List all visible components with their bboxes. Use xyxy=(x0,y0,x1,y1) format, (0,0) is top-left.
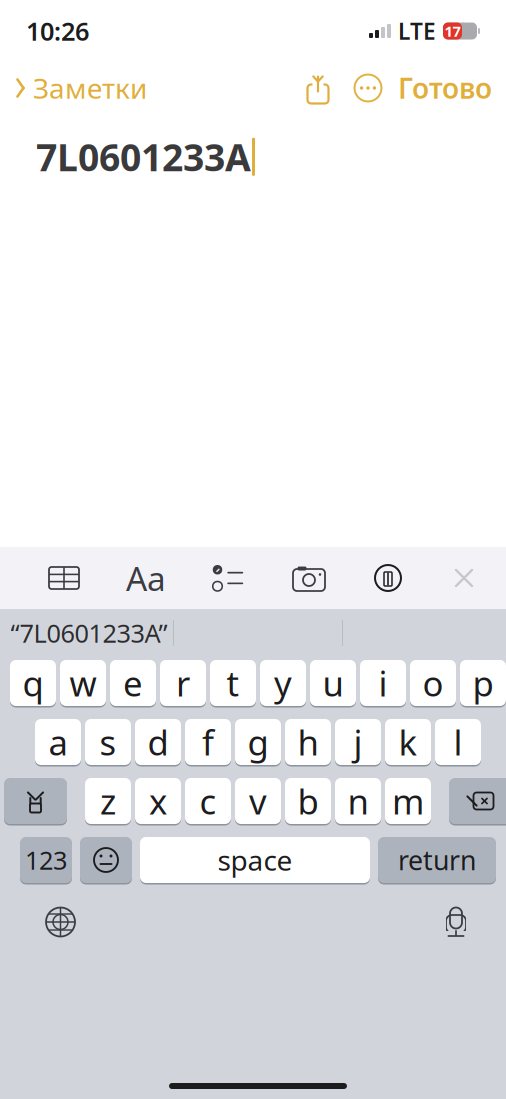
button[interactable]: Заметки xyxy=(0,63,155,113)
button[interactable]: return xyxy=(378,836,496,884)
staticText: o xyxy=(422,660,443,706)
button[interactable]: Hide keyboard xyxy=(444,558,484,598)
button[interactable]: d xyxy=(135,718,181,766)
button[interactable]: Delete xyxy=(449,777,506,825)
staticText: m xyxy=(392,778,424,824)
staticText: Заметки xyxy=(33,69,147,107)
staticText: a xyxy=(48,719,67,765)
button[interactable]: l xyxy=(435,718,481,766)
button[interactable]: r xyxy=(160,659,206,707)
button[interactable]: Готово xyxy=(398,63,506,113)
button[interactable]: t xyxy=(210,659,256,707)
button[interactable]: y xyxy=(260,659,306,707)
staticText: w xyxy=(69,660,96,706)
staticText: space xyxy=(217,841,292,879)
button[interactable]: j xyxy=(335,718,381,766)
staticText: u xyxy=(322,660,343,706)
staticText: x xyxy=(149,778,167,824)
button[interactable]: “7L0601233A” xyxy=(5,610,173,656)
staticText: b xyxy=(297,778,318,824)
button[interactable]: Checklist xyxy=(206,559,250,597)
button[interactable]: v xyxy=(235,777,281,825)
staticText: Aa xyxy=(126,556,166,600)
staticText: LTE xyxy=(398,16,436,46)
staticText: d xyxy=(147,719,168,765)
staticText: 17 xyxy=(444,21,460,41)
staticText: z xyxy=(100,778,116,824)
staticText: 123 xyxy=(25,843,67,877)
staticText: q xyxy=(22,660,43,706)
staticText: s xyxy=(99,719,116,765)
staticText: return xyxy=(398,842,476,878)
staticText: p xyxy=(472,660,493,706)
button[interactable]: b xyxy=(285,777,331,825)
button[interactable]: Insert table xyxy=(42,560,86,596)
button[interactable]: e xyxy=(110,659,156,707)
staticText: n xyxy=(347,778,368,824)
button[interactable]: n xyxy=(335,777,381,825)
staticText: j xyxy=(353,719,362,765)
staticText: k xyxy=(398,719,417,765)
button[interactable]: s xyxy=(85,718,131,766)
button[interactable]: Dictation xyxy=(429,894,483,950)
staticText: i xyxy=(378,660,387,706)
button[interactable]: p xyxy=(460,659,506,707)
button[interactable]: Shift xyxy=(4,777,67,825)
button[interactable]: 123 xyxy=(20,836,72,884)
button[interactable]: Emoji xyxy=(80,836,132,884)
staticText: 7L0601233A xyxy=(36,132,251,182)
button[interactable]: z xyxy=(85,777,131,825)
staticText: r xyxy=(176,660,190,706)
button[interactable]: o xyxy=(410,659,456,707)
staticText: f xyxy=(202,719,214,765)
button[interactable]: a xyxy=(35,718,81,766)
button[interactable]: i xyxy=(360,659,406,707)
button[interactable]: space xyxy=(140,836,370,884)
button[interactable]: q xyxy=(10,659,56,707)
button[interactable]: Next keyboard xyxy=(33,894,88,949)
staticText: h xyxy=(297,719,318,765)
staticText: c xyxy=(199,778,216,824)
staticText: e xyxy=(123,660,143,706)
button[interactable]: m xyxy=(385,777,431,825)
staticText: l xyxy=(453,719,462,765)
staticText: v xyxy=(249,778,267,824)
staticText: 10:26 xyxy=(26,14,89,48)
button[interactable]: h xyxy=(285,718,331,766)
button[interactable]: Markup xyxy=(368,558,408,598)
button[interactable]: f xyxy=(185,718,231,766)
button[interactable]: u xyxy=(310,659,356,707)
button[interactable]: k xyxy=(385,718,431,766)
button[interactable]: x xyxy=(135,777,181,825)
button[interactable]: g xyxy=(235,718,281,766)
staticText: Готово xyxy=(398,69,492,107)
staticText: g xyxy=(247,719,268,765)
button[interactable]: c xyxy=(185,777,231,825)
button[interactable]: More xyxy=(338,74,398,102)
button[interactable]: Camera xyxy=(286,559,332,597)
staticText: t xyxy=(226,660,239,706)
staticText: “7L0601233A” xyxy=(10,616,167,650)
staticText: y xyxy=(274,660,292,706)
button[interactable]: Share xyxy=(298,72,338,104)
button[interactable]: Format xyxy=(122,552,170,604)
button[interactable]: w xyxy=(60,659,106,707)
